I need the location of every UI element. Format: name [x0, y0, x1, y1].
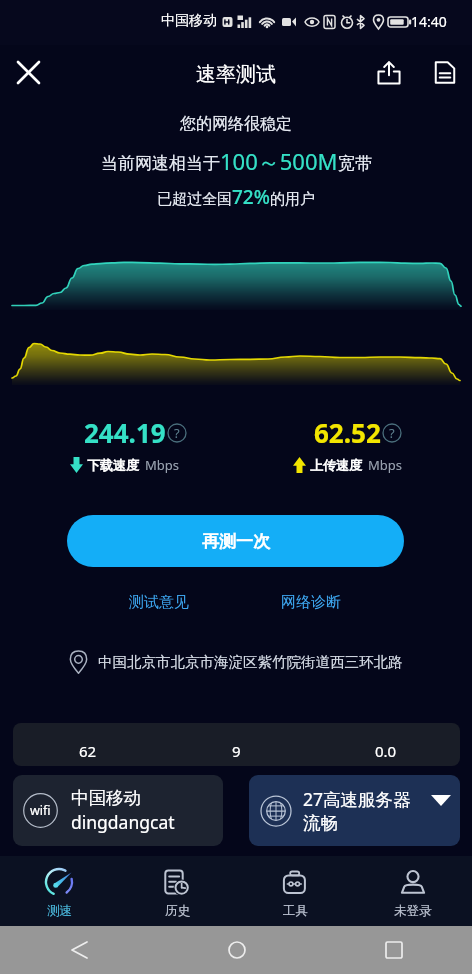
staticText: 您的网络很稳定 [180, 114, 292, 134]
button[interactable]: Home [158, 926, 315, 974]
button[interactable]: wifi [13, 775, 223, 846]
staticText: 流畅 [303, 812, 338, 834]
button[interactable]: 未登录 [354, 856, 472, 926]
staticText: 网络诊断 [281, 593, 341, 612]
staticText: 27高速服务器 [303, 787, 411, 811]
staticText: Mbps [368, 456, 403, 474]
staticText: 测速 [47, 903, 72, 919]
button[interactable]: Recents [315, 926, 472, 974]
staticText: dingdangcat [71, 810, 175, 834]
button[interactable]: 测试意见 [129, 589, 189, 616]
staticText: Mbps [145, 456, 180, 474]
staticText: 宽带 [338, 153, 372, 174]
staticText: 的用户 [270, 190, 315, 209]
staticText: 已超过全国 [157, 190, 232, 209]
button[interactable]: 工具 [236, 856, 354, 926]
staticText: 未登录 [394, 903, 432, 919]
button[interactable]: 历史 [118, 856, 236, 926]
staticText: 当前网速相当于 [101, 153, 220, 174]
staticText: 下载速度 [87, 457, 139, 473]
button[interactable]: Share [369, 53, 408, 92]
staticText: 中国移动 [161, 12, 217, 30]
button[interactable]: 再测一次 [67, 515, 404, 567]
staticText: 工具 [283, 903, 308, 919]
button[interactable]: Report [425, 53, 464, 92]
staticText: 再测一次 [202, 531, 270, 552]
button[interactable]: 27高速服务器 [249, 775, 460, 846]
button[interactable]: 测速 [0, 856, 118, 926]
staticText: 测试意见 [129, 593, 189, 612]
staticText: 244.19 [84, 415, 166, 450]
staticText: 中国移动 [71, 787, 141, 809]
staticText: 62.52 [314, 415, 381, 450]
staticText: 14:40 [411, 12, 447, 31]
staticText: 72% [232, 184, 270, 210]
staticText: 62 [79, 741, 97, 761]
staticText: 速率测试 [0, 62, 472, 87]
staticText: ? [174, 424, 180, 442]
staticText: 中国北京市北京市海淀区紫竹院街道西三环北路 [98, 653, 403, 671]
staticText: 100～500M [220, 146, 338, 176]
staticText: 0.0 [375, 741, 397, 761]
staticText: ? [389, 424, 395, 442]
button[interactable]: Back [0, 926, 158, 974]
staticText: 上传速度 [310, 457, 362, 473]
staticText: 历史 [165, 903, 190, 919]
staticText: 9 [232, 741, 241, 761]
button[interactable]: 网络诊断 [281, 589, 341, 616]
button[interactable]: Info [382, 423, 402, 443]
button[interactable]: Info [167, 423, 187, 443]
button[interactable]: Close [9, 53, 48, 92]
staticText: wifi [30, 802, 51, 819]
